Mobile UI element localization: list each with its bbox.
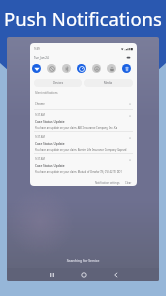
- button[interactable]: Quick setting 5: [92, 64, 101, 73]
- staticText: Silent notifications: [35, 91, 58, 95]
- staticText: Push Notifications: [0, 6, 166, 31]
- button[interactable]: 9:37 AM: [30, 153, 137, 175]
- staticText: 9:37 AM: [35, 135, 45, 139]
- button[interactable]: Quick setting 1: [32, 64, 41, 73]
- button[interactable]: Quick setting 4: [77, 64, 86, 73]
- button[interactable]: Home: [80, 271, 88, 279]
- staticText: Searching for Service: [7, 258, 159, 262]
- staticText: 9:39: [34, 47, 40, 51]
- button[interactable]: Notification settings: [95, 181, 120, 185]
- button[interactable]: Quick setting 2: [47, 64, 56, 73]
- button[interactable]: Quick setting 3: [62, 64, 71, 73]
- staticText: Chrome: [35, 102, 45, 106]
- button[interactable]: Recent apps: [48, 271, 56, 279]
- button[interactable]: Chrome: [35, 99, 132, 109]
- staticText: You have an update on your claim. Mutual…: [35, 170, 128, 174]
- button[interactable]: Back: [112, 271, 120, 279]
- button[interactable]: Devices: [34, 79, 82, 87]
- staticText: 9:37 AM: [35, 113, 45, 117]
- button[interactable]: Media: [84, 79, 133, 87]
- staticText: You have an update on your claim. ABC In…: [35, 126, 118, 130]
- staticText: Case Status Update: [35, 120, 65, 124]
- button[interactable]: 9:37 AM: [30, 131, 137, 153]
- staticText: Tue, Jan 24: [34, 56, 49, 60]
- button[interactable]: Quick setting 6: [107, 64, 116, 73]
- staticText: Case Status Update: [35, 164, 65, 168]
- staticText: Media: [104, 81, 113, 85]
- staticText: Devices: [53, 81, 63, 85]
- staticText: 9:37 AM: [35, 157, 45, 161]
- staticText: You have an update on your claim. Barrie…: [35, 148, 127, 152]
- button[interactable]: Clear: [125, 181, 132, 185]
- staticText: Case Status Update: [35, 142, 65, 146]
- button[interactable]: Quick setting 7: [122, 64, 131, 73]
- button[interactable]: 9:37 AM: [30, 109, 137, 131]
